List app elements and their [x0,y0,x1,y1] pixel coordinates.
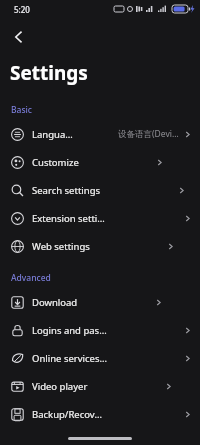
button[interactable]: Search settings [0,176,200,204]
staticText: Advanced [11,272,51,284]
staticText: Web settings [32,240,90,253]
button[interactable]: Web settings [0,232,200,260]
button[interactable]: Download [0,288,200,316]
staticText: Language [32,128,75,141]
staticText: Extension settings [32,212,107,225]
button[interactable]: Extension settings [0,204,200,232]
staticText: Basic [11,104,33,116]
button[interactable]: Back [4,22,34,52]
button[interactable]: Online services for desktop browsers [0,344,200,372]
staticText: 设备语言(Devi… [118,128,179,140]
staticText: Download [32,296,78,309]
staticText: 5:20 [14,4,30,15]
staticText: Search settings [32,184,101,197]
staticText: Customize [32,156,79,169]
button[interactable]: Customize [0,148,200,176]
button[interactable]: Backup/Recovery [0,400,200,428]
staticText: Settings [10,60,88,86]
staticText: Video player [32,380,88,393]
button[interactable]: Logins and passwords [0,316,200,344]
staticText: Backup/Recovery [32,408,107,421]
button[interactable]: Video player [0,372,200,400]
staticText: Online services for desktop browsers [32,352,107,365]
staticText: Logins and passwords [32,324,107,337]
button[interactable]: Language [0,120,200,148]
